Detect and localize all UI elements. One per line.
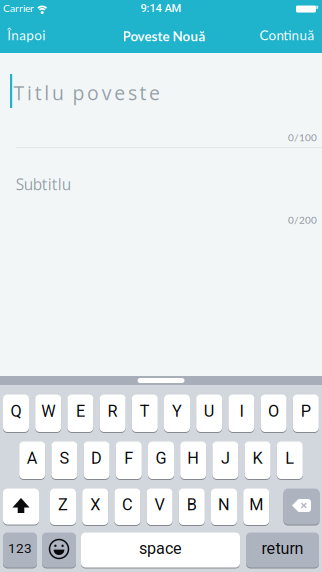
button[interactable]: Y: [164, 394, 190, 432]
button[interactable]: S: [51, 441, 77, 479]
button[interactable]: return: [246, 532, 319, 568]
staticText: Y: [172, 402, 182, 421]
button[interactable]: K: [245, 441, 271, 479]
staticText: Z: [58, 495, 68, 514]
staticText: e: [149, 79, 160, 106]
button[interactable]: Q: [3, 394, 29, 432]
staticText: R: [108, 402, 118, 421]
staticText: H: [187, 449, 199, 468]
button[interactable]: I: [228, 394, 254, 432]
staticText: t: [35, 79, 42, 106]
staticText: P: [301, 402, 311, 421]
staticText: Poveste Nouă: [122, 28, 205, 44]
staticText: G: [155, 449, 166, 468]
staticText: C: [122, 495, 133, 514]
staticText: A: [27, 449, 38, 468]
button[interactable]: C: [114, 488, 140, 525]
staticText: T: [140, 402, 150, 421]
staticText: M: [249, 495, 263, 514]
button[interactable]: N: [211, 488, 237, 525]
staticText: 0/200: [288, 214, 317, 226]
button[interactable]: O: [261, 394, 287, 432]
staticText: e: [114, 79, 125, 106]
button[interactable]: R: [100, 394, 126, 432]
button[interactable]: Delete: [283, 488, 319, 525]
staticText: t: [139, 79, 146, 106]
button[interactable]: E: [67, 394, 93, 432]
button[interactable]: T: [132, 394, 158, 432]
button[interactable]: Emoji: [42, 532, 76, 568]
staticText: T: [13, 79, 24, 106]
staticText: p: [72, 79, 84, 106]
button[interactable]: V: [147, 488, 173, 525]
button[interactable]: J: [212, 441, 238, 479]
staticText: D: [91, 449, 102, 468]
staticText: Carrier: [3, 2, 34, 14]
staticText: X: [90, 495, 100, 514]
staticText: E: [76, 402, 85, 421]
button[interactable]: Continuă: [259, 27, 314, 43]
button[interactable]: F: [116, 441, 142, 479]
staticText: Q: [10, 402, 21, 421]
button[interactable]: A: [19, 441, 45, 479]
staticText: V: [155, 495, 165, 514]
staticText: v: [102, 79, 112, 106]
staticText: o: [87, 79, 99, 106]
staticText: K: [253, 449, 263, 468]
button[interactable]: G: [148, 441, 174, 479]
staticText: S: [59, 449, 69, 468]
staticText: B: [187, 495, 197, 514]
staticText: 0/100: [288, 131, 317, 143]
button[interactable]: Z: [50, 488, 76, 525]
button[interactable]: 123: [3, 532, 37, 568]
staticText: W: [41, 402, 55, 421]
staticText: space: [139, 539, 182, 558]
staticText: U: [204, 402, 215, 421]
staticText: u: [52, 79, 64, 106]
button[interactable]: P: [293, 394, 319, 432]
staticText: 123: [8, 540, 32, 556]
button[interactable]: W: [35, 394, 61, 432]
staticText: N: [218, 495, 230, 514]
staticText: Subtitlu: [16, 174, 71, 195]
button[interactable]: B: [179, 488, 205, 525]
button[interactable]: Înapoi: [7, 27, 45, 43]
staticText: Înapoi: [7, 27, 45, 43]
staticText: L: [285, 449, 294, 468]
staticText: I: [239, 402, 243, 421]
button[interactable]: D: [84, 441, 110, 479]
button[interactable]: H: [180, 441, 206, 479]
staticText: Continuă: [259, 27, 314, 43]
staticText: i: [27, 79, 32, 106]
button[interactable]: L: [277, 441, 303, 479]
button[interactable]: space: [81, 532, 240, 568]
button[interactable]: Shift: [3, 488, 39, 525]
staticText: return: [261, 539, 303, 558]
staticText: F: [124, 449, 133, 468]
staticText: s: [128, 79, 137, 106]
staticText: 9:14 AM: [140, 2, 181, 15]
button[interactable]: U: [196, 394, 222, 432]
staticText: O: [268, 402, 279, 421]
staticText: l: [44, 79, 49, 106]
button[interactable]: X: [82, 488, 108, 525]
staticText: J: [221, 449, 230, 468]
button[interactable]: M: [243, 488, 269, 525]
